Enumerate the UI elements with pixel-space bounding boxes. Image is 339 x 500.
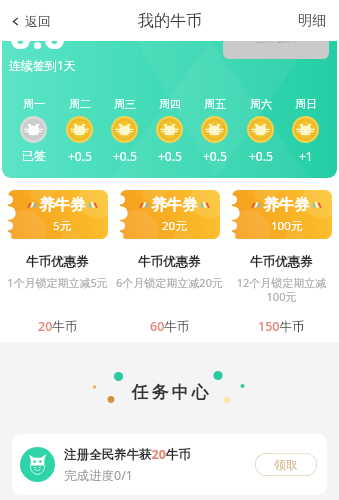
staticText: 周四 bbox=[159, 97, 181, 111]
staticText: 20元 bbox=[162, 218, 187, 234]
staticText: +0.5 bbox=[249, 148, 273, 164]
staticText: 60牛币 bbox=[150, 318, 190, 335]
staticText: 养牛券 bbox=[39, 195, 86, 215]
staticText: 6个月锁定期立减20元 bbox=[115, 275, 224, 290]
staticText: 150牛币 bbox=[258, 318, 305, 335]
staticText: 养牛券 bbox=[151, 195, 198, 215]
button[interactable]: 周日 bbox=[292, 97, 319, 164]
staticText: 连续签到1天 bbox=[9, 57, 76, 73]
staticText: 周六 bbox=[250, 97, 272, 111]
button[interactable]: 返回 bbox=[0, 6, 59, 36]
staticText: 周日 bbox=[295, 97, 317, 111]
staticText: 完成进度0/1 bbox=[64, 467, 133, 484]
staticText: +0.5 bbox=[158, 148, 182, 164]
staticText: 0.0 bbox=[9, 41, 66, 60]
staticText: 牛币优惠券 bbox=[250, 254, 313, 270]
staticText: 1个月锁定期立减5元 bbox=[3, 275, 112, 290]
button[interactable]: 周五 bbox=[201, 97, 228, 164]
staticText: +0.5 bbox=[113, 148, 137, 164]
staticText: 12个月锁定期立减 100元 bbox=[227, 275, 336, 304]
staticText: 周五 bbox=[204, 97, 226, 111]
staticText: 领取 bbox=[274, 457, 298, 472]
staticText: 100元 bbox=[271, 218, 303, 234]
staticText: 周二 bbox=[69, 97, 91, 111]
button[interactable]: 领取 bbox=[255, 453, 317, 476]
button[interactable]: 周二 bbox=[66, 97, 93, 164]
button[interactable]: 注册全民养牛获20牛币 bbox=[12, 434, 327, 495]
staticText: 养牛券 bbox=[263, 195, 310, 215]
button[interactable]: 周六 bbox=[247, 97, 274, 164]
staticText: 我的牛币 bbox=[138, 11, 202, 31]
staticText: +1 bbox=[299, 148, 313, 164]
staticText: +0.5 bbox=[68, 148, 92, 164]
button[interactable]: 养牛券 bbox=[3, 190, 112, 335]
staticText: 5元 bbox=[53, 218, 72, 234]
button[interactable]: 明细 bbox=[288, 5, 339, 37]
button[interactable]: 立即签到 bbox=[223, 41, 329, 59]
staticText: 周一 bbox=[23, 97, 45, 111]
staticText: 周三 bbox=[114, 97, 136, 111]
staticText: 任务中心 bbox=[130, 382, 210, 403]
staticText: 注册全民养牛获20牛币 bbox=[64, 446, 191, 463]
staticText: 返回 bbox=[25, 13, 51, 29]
button[interactable]: 周四 bbox=[156, 97, 183, 164]
button[interactable]: 养牛券 bbox=[227, 190, 336, 335]
staticText: 立即签到 bbox=[256, 41, 296, 45]
staticText: 牛币优惠券 bbox=[26, 254, 89, 270]
staticText: 20牛币 bbox=[38, 318, 78, 335]
button[interactable]: 周一 bbox=[20, 97, 47, 163]
staticText: 牛币优惠券 bbox=[138, 254, 201, 270]
button[interactable]: 周三 bbox=[111, 97, 138, 164]
staticText: 已签 bbox=[22, 148, 46, 163]
button[interactable]: 养牛券 bbox=[115, 190, 224, 335]
staticText: +0.5 bbox=[203, 148, 227, 164]
